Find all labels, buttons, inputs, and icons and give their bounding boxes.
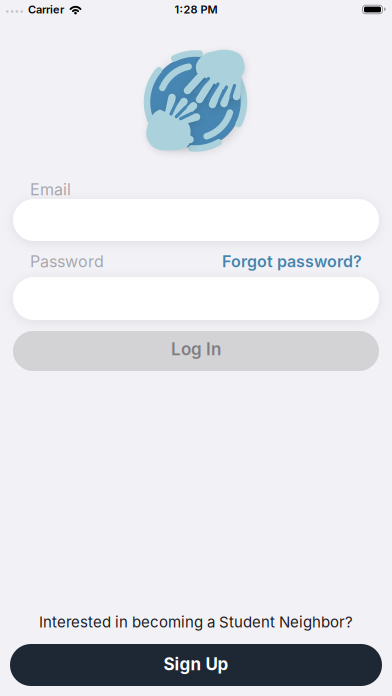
button[interactable]: Sign Up bbox=[10, 644, 382, 686]
button[interactable]: Forgot password? bbox=[222, 252, 362, 271]
staticText: Password bbox=[30, 252, 104, 271]
button[interactable]: Log In bbox=[13, 331, 379, 371]
staticText: Interested in becoming a Student Neighbo… bbox=[39, 613, 353, 631]
staticText: Log In bbox=[171, 339, 221, 359]
staticText: Forgot password? bbox=[222, 252, 362, 271]
staticText: 1:28 PM bbox=[174, 3, 217, 16]
staticText: Sign Up bbox=[163, 654, 228, 674]
staticText: Email bbox=[30, 180, 71, 199]
staticText: Carrier bbox=[28, 3, 64, 16]
